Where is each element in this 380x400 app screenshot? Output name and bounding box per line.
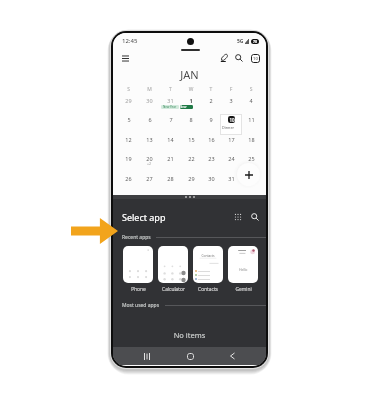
staticText: T — [201, 86, 221, 93]
staticText: +2 — [147, 161, 152, 166]
button[interactable]: Menu — [117, 50, 133, 66]
staticText: Select app — [122, 211, 166, 223]
staticText: New Year — [180, 105, 193, 109]
button[interactable]: Calculator — [158, 246, 188, 293]
staticText: Gemini — [235, 286, 252, 293]
staticText: M — [139, 86, 160, 93]
staticText: S — [241, 86, 261, 93]
staticText: 17 — [228, 136, 235, 143]
staticText: New Year — [163, 105, 177, 109]
staticText: 10 — [229, 117, 235, 123]
staticText: 70 — [253, 39, 258, 44]
button[interactable]: Contacts — [193, 246, 223, 293]
staticText: Calculator — [162, 286, 185, 293]
staticText: Dinner — [222, 125, 235, 130]
staticText: 23 — [208, 155, 215, 162]
staticText: 3 — [229, 97, 233, 104]
staticText: 26 — [125, 175, 132, 182]
button[interactable]: Hello — [228, 246, 258, 293]
staticText: 16 — [208, 136, 215, 143]
staticText: 25 — [248, 155, 255, 162]
staticText: 12 — [125, 136, 132, 143]
button[interactable]: Recents — [138, 347, 156, 365]
staticText: Recent apps — [122, 234, 151, 241]
staticText: 29 — [188, 175, 195, 182]
staticText: 30 — [146, 97, 153, 104]
button[interactable]: Home — [181, 347, 199, 365]
button[interactable]: Dinner — [220, 114, 242, 135]
staticText: 7 — [169, 116, 173, 123]
staticText: 4 — [249, 97, 253, 104]
staticText: S — [118, 86, 139, 93]
staticText: JAN — [113, 67, 266, 82]
staticText: 30 — [208, 175, 215, 182]
button[interactable]: Go to today — [247, 50, 263, 66]
button[interactable]: Edit — [216, 50, 232, 66]
staticText: T — [160, 86, 181, 93]
staticText: Most used apps — [122, 302, 160, 309]
staticText: 5 — [127, 116, 131, 123]
staticText: 31 — [167, 97, 174, 104]
button[interactable]: Create event — [237, 163, 260, 186]
staticText: Phone — [131, 286, 146, 293]
staticText: 8 — [189, 116, 193, 123]
staticText: 12:45 — [122, 37, 138, 45]
staticText: 22 — [188, 155, 195, 162]
staticText: 2 — [209, 97, 213, 104]
staticText: 14 — [167, 136, 174, 143]
staticText: 19 — [125, 155, 132, 162]
staticText: Contacts — [193, 254, 223, 258]
staticText: W — [181, 86, 201, 93]
staticText: 9 — [209, 116, 213, 123]
button[interactable]: Grid view — [231, 210, 245, 224]
staticText: 31 — [228, 175, 235, 182]
staticText: 1 — [189, 97, 193, 104]
button[interactable]: Back — [223, 347, 241, 365]
staticText: No items — [113, 330, 266, 340]
staticText: Hello — [239, 267, 248, 272]
staticText: F — [221, 86, 241, 93]
staticText: 13 — [146, 136, 153, 143]
staticText: 29 — [125, 97, 132, 104]
staticText: 21 — [167, 155, 174, 162]
staticText: 27 — [146, 175, 153, 182]
staticText: 5G — [237, 38, 244, 45]
button[interactable]: Phone — [123, 246, 153, 293]
staticText: Contacts — [198, 286, 218, 293]
staticText: 15 — [188, 136, 195, 143]
button[interactable]: Search — [231, 50, 247, 66]
staticText: 6 — [148, 116, 152, 123]
staticText: 10 — [253, 56, 258, 62]
staticText: 18 — [248, 136, 255, 143]
button[interactable]: Search apps — [248, 210, 262, 224]
staticText: 24 — [228, 155, 235, 162]
staticText: 20 — [146, 155, 153, 162]
staticText: 11 — [248, 116, 255, 123]
staticText: 28 — [167, 175, 174, 182]
